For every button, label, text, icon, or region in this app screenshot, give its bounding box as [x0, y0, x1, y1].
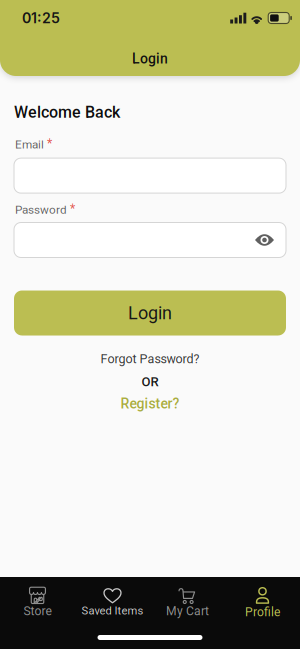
button[interactable]: Profile — [225, 586, 300, 619]
button[interactable]: Login — [14, 290, 286, 335]
staticText: Welcome Back — [14, 103, 120, 122]
staticText: Login — [132, 51, 168, 67]
button[interactable]: My Cart — [150, 587, 225, 618]
button[interactable]: Show password — [255, 234, 274, 245]
button[interactable]: Forgot Password? — [100, 351, 199, 366]
staticText: Store — [23, 604, 51, 618]
staticText: Password — [15, 203, 67, 217]
staticText: Forgot Password? — [100, 351, 199, 366]
button[interactable]: Saved Items — [75, 588, 150, 617]
staticText: OR — [141, 374, 158, 389]
staticText: My Cart — [166, 604, 209, 618]
staticText: Email — [15, 138, 44, 151]
staticText: Profile — [245, 605, 280, 619]
staticText: * — [70, 201, 75, 215]
staticText: Register? — [120, 395, 179, 412]
staticText: Login — [128, 302, 172, 324]
staticText: * — [47, 136, 52, 150]
button[interactable]: Register? — [120, 389, 179, 412]
staticText: Saved Items — [81, 604, 143, 617]
button[interactable]: Store — [0, 587, 75, 618]
staticText: 01:25 — [22, 9, 60, 26]
